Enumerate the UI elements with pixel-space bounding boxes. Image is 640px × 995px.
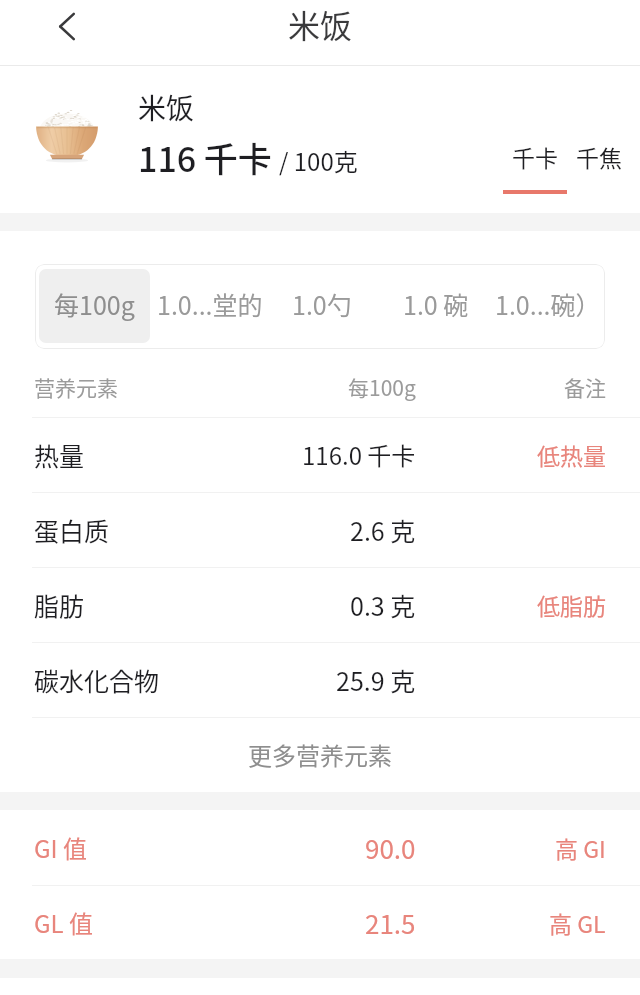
staticText: 1.0...堂的 [157, 286, 263, 322]
staticText: 低脂肪 [537, 588, 606, 621]
button[interactable]: 每100g [39, 269, 150, 343]
button[interactable]: 蛋白质 [0, 492, 640, 567]
staticText: 低热量 [537, 438, 606, 471]
staticText: 千卡 [512, 140, 558, 173]
button[interactable]: 碳水化合物 [0, 642, 640, 717]
staticText: 备注 [564, 372, 606, 402]
staticText: 1.0 碗 [403, 286, 469, 322]
staticText: GI 值 [34, 830, 87, 865]
staticText: 每100g [54, 286, 135, 322]
staticText: 脂肪 [34, 587, 85, 623]
staticText: / 100克 [279, 143, 358, 178]
staticText: 25.9 克 [336, 662, 416, 698]
staticText: 每100g [348, 372, 416, 402]
button[interactable]: 1.0...堂的 [147, 269, 273, 343]
button[interactable]: 1.0勺 [282, 269, 362, 343]
staticText: 0.3 克 [350, 587, 416, 623]
button[interactable]: 更多营养元素 [0, 717, 640, 792]
staticText: 21.5 [365, 904, 416, 942]
staticText: 2.6 克 [350, 512, 416, 548]
button[interactable]: GI 值 [0, 810, 640, 885]
button[interactable]: 1.0...碗） [485, 269, 611, 343]
button[interactable]: 热量 [0, 417, 640, 492]
staticText: 蛋白质 [34, 512, 110, 548]
staticText: 116.0 千卡 [302, 437, 416, 472]
staticText: 热量 [34, 437, 85, 473]
staticText: 1.0...碗） [495, 286, 601, 322]
button[interactable]: GL 值 [0, 885, 640, 960]
button[interactable]: 脂肪 [0, 567, 640, 642]
staticText: 营养元素 [34, 372, 118, 402]
staticText: 更多营养元素 [248, 737, 392, 772]
button[interactable]: 1.0 碗 [393, 269, 479, 343]
staticText: 米饭 [288, 1, 353, 47]
button[interactable]: 千卡 [495, 134, 575, 196]
staticText: 千焦 [576, 140, 622, 173]
staticText: 高 GL [549, 906, 606, 939]
staticText: 90.0 [365, 829, 416, 867]
staticText: 1.0勺 [292, 286, 352, 322]
staticText: 高 GI [555, 831, 606, 864]
staticText: 116 千卡 [138, 133, 272, 182]
staticText: GL 值 [34, 905, 93, 940]
button[interactable]: Back [42, 1, 94, 63]
staticText: 米饭 [138, 87, 195, 128]
staticText: 碳水化合物 [34, 662, 160, 698]
button[interactable]: 千焦 [575, 134, 635, 196]
